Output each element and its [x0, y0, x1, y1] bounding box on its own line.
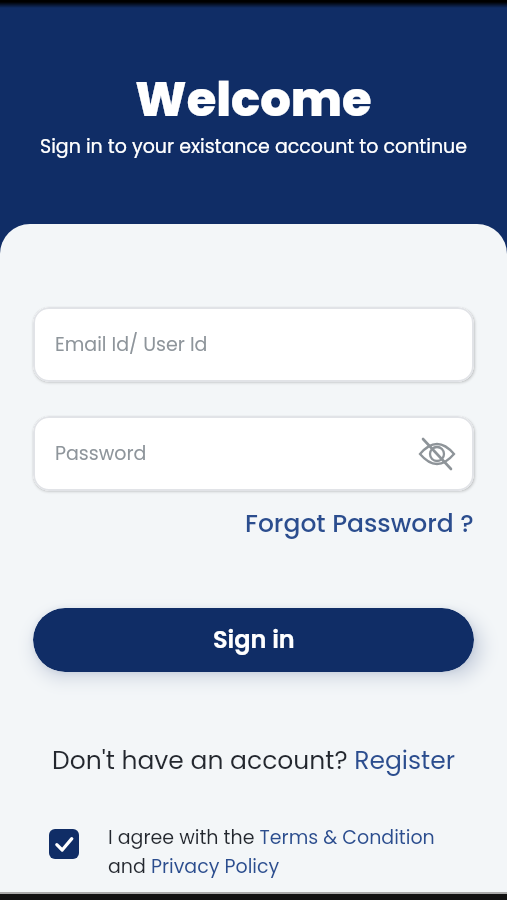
button[interactable] [49, 829, 79, 859]
button[interactable]: Forgot Password ? [245, 506, 474, 541]
staticText: Sign in to your existance account to con… [40, 133, 467, 160]
button[interactable]: I agree with the Terms & Condition and P… [108, 824, 435, 880]
staticText: Sign in [213, 623, 295, 657]
button[interactable]: Password [33, 416, 474, 491]
button[interactable]: Email Id/ User Id [33, 307, 474, 382]
staticText: Password [55, 440, 147, 467]
staticText: Forgot Password ? [245, 506, 474, 541]
staticText: Welcome [135, 66, 372, 133]
staticText: Don't have an account? Register [52, 743, 455, 778]
button[interactable]: Sign in [33, 608, 474, 672]
button[interactable]: Don't have an account? Register [33, 743, 474, 778]
staticText: Email Id/ User Id [55, 331, 208, 358]
